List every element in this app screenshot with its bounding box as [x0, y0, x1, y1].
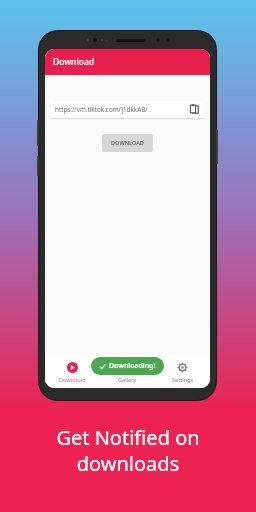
- button[interactable]: Paste from clipboard: [188, 103, 201, 116]
- staticText: https://vm.tiktok.com/]1dkkAB/: [55, 105, 188, 114]
- staticText: Get Notified on downloads: [56, 424, 200, 476]
- button[interactable]: Gallery: [100, 354, 155, 388]
- other: Settings: [177, 362, 188, 373]
- button[interactable]: https://vm.tiktok.com/]1dkkAB/: [51, 101, 204, 118]
- button[interactable]: Settings: [155, 354, 210, 388]
- staticText: Download: [53, 56, 95, 68]
- button[interactable]: DOWNLOAD: [102, 134, 153, 152]
- other: Download: [67, 362, 78, 373]
- button[interactable]: Downloading!: [91, 357, 164, 375]
- staticText: Download: [59, 376, 86, 384]
- staticText: Downloading!: [109, 361, 156, 371]
- staticText: Settings: [172, 376, 194, 384]
- button[interactable]: Download: [45, 354, 100, 388]
- staticText: Gallery: [118, 376, 137, 384]
- staticText: DOWNLOAD: [111, 139, 144, 147]
